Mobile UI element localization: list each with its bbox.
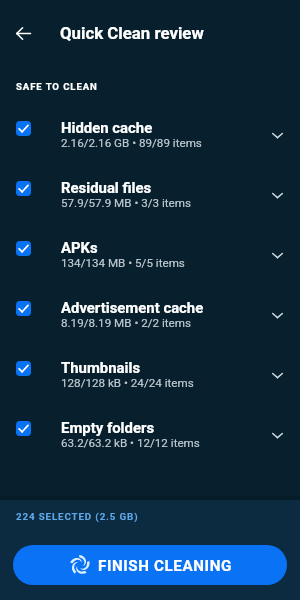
button[interactable]: Toggle APKs <box>8 233 38 263</box>
button[interactable]: Toggle Hidden cache <box>0 98 300 158</box>
staticText: Residual files <box>61 179 266 196</box>
button[interactable]: Expand Thumbnails <box>262 360 292 390</box>
staticText: 8.19/8.19 MB • 2/2 items <box>61 316 266 330</box>
button[interactable]: Toggle APKs <box>0 218 300 278</box>
staticText: 134/134 MB • 5/5 items <box>61 256 266 270</box>
button[interactable]: Toggle Empty folders <box>0 398 300 458</box>
button[interactable]: Toggle Hidden cache <box>8 113 38 143</box>
button[interactable]: Toggle Residual files <box>8 173 38 203</box>
button[interactable]: Expand APKs <box>262 240 292 270</box>
button[interactable]: Toggle Advertisement cache <box>0 278 300 338</box>
staticText: 128/128 kB • 24/24 items <box>61 376 266 390</box>
staticText: Advertisement cache <box>61 299 266 316</box>
button[interactable]: Toggle Thumbnails <box>0 338 300 398</box>
button[interactable]: Toggle Residual files <box>0 158 300 218</box>
staticText: SAFE TO CLEAN <box>16 81 98 92</box>
button[interactable]: Expand Hidden cache <box>262 120 292 150</box>
button[interactable]: FINISH CLEANING <box>13 545 287 585</box>
button[interactable]: Toggle Advertisement cache <box>8 293 38 323</box>
staticText: 63.2/63.2 kB • 12/12 items <box>61 436 266 450</box>
staticText: APKs <box>61 239 266 256</box>
staticText: 57.9/57.9 MB • 3/3 items <box>61 196 266 210</box>
button[interactable]: Back <box>7 17 39 49</box>
staticText: FINISH CLEANING <box>98 557 232 575</box>
button[interactable]: Expand Residual files <box>262 180 292 210</box>
staticText: 224 SELECTED (2.5 GB) <box>16 511 139 522</box>
staticText: Empty folders <box>61 419 266 436</box>
staticText: Quick Clean review <box>60 23 204 43</box>
staticText: 2.16/2.16 GB • 89/89 items <box>61 136 266 150</box>
button[interactable]: Toggle Empty folders <box>8 413 38 443</box>
staticText: Thumbnails <box>61 359 266 376</box>
button[interactable]: Expand Advertisement cache <box>262 300 292 330</box>
staticText: Hidden cache <box>61 119 266 136</box>
button[interactable]: Expand Empty folders <box>262 420 292 450</box>
button[interactable]: Toggle Thumbnails <box>8 353 38 383</box>
